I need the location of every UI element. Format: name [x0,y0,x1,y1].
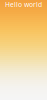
staticText: Hello world [5,0,42,9]
